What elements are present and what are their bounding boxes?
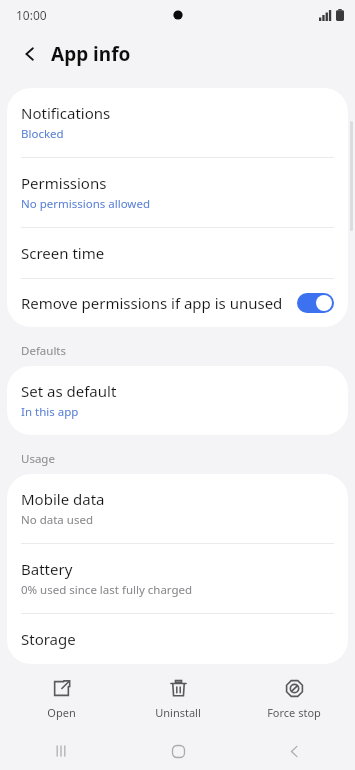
- button[interactable]: Back: [239, 732, 349, 770]
- button[interactable]: Notifications: [7, 88, 348, 157]
- staticText: Force stop: [267, 705, 321, 720]
- staticText: Screen time: [21, 243, 105, 263]
- button[interactable]: Open: [6, 671, 116, 726]
- button[interactable]: Storage: [7, 614, 348, 664]
- button[interactable]: Battery: [7, 544, 348, 613]
- staticText: Usage: [21, 451, 55, 467]
- staticText: Defaults: [21, 343, 67, 359]
- staticText: No data used: [21, 512, 93, 528]
- button[interactable]: Recent apps: [6, 732, 116, 770]
- button[interactable]: Screen time: [7, 228, 348, 278]
- staticText: Blocked: [21, 126, 64, 142]
- staticText: Uninstall: [155, 705, 201, 720]
- staticText: Notifications: [21, 103, 111, 123]
- staticText: Set as default: [21, 381, 117, 401]
- button[interactable]: Uninstall: [123, 671, 233, 726]
- staticText: Open: [47, 705, 76, 720]
- staticText: 0% used since last fully charged: [21, 582, 193, 598]
- staticText: Mobile data: [21, 489, 105, 509]
- staticText: Storage: [21, 629, 76, 649]
- button[interactable]: Mobile data: [7, 474, 348, 543]
- staticText: No permissions allowed: [21, 196, 150, 212]
- button[interactable]: Force stop: [239, 671, 349, 726]
- staticText: Battery: [21, 559, 73, 579]
- staticText: 10:00: [16, 7, 47, 23]
- button[interactable]: Back: [12, 36, 48, 72]
- button[interactable]: Set as default: [7, 366, 348, 435]
- staticText: In this app: [21, 404, 79, 420]
- staticText: App info: [51, 41, 131, 67]
- staticText: Remove permissions if app is unused: [21, 293, 289, 313]
- button[interactable]: Remove permissions if app is unused: [7, 279, 348, 327]
- button[interactable]: Permissions: [7, 158, 348, 227]
- button[interactable]: Home: [123, 732, 233, 770]
- staticText: Permissions: [21, 173, 107, 193]
